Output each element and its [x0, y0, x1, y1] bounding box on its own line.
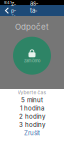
staticText: 9:41: [4, 0, 12, 5]
staticText: Odpočet: [15, 22, 49, 32]
staticText: zamčeno: [24, 58, 40, 63]
staticText: Nastavení: [30, 0, 38, 29]
button[interactable]: Back: [2, 5, 18, 16]
staticText: Vyberte čas: [17, 90, 46, 95]
button[interactable]: Zrušit: [0, 129, 64, 137]
staticText: 1 hodina: [20, 105, 44, 112]
button[interactable]: 3 hodiny: [0, 121, 64, 129]
button[interactable]: 5 minut: [0, 96, 64, 104]
button[interactable]: 1 hodina: [0, 104, 64, 112]
staticText: 5 minut: [21, 96, 43, 104]
staticText: 2 hodiny: [19, 113, 45, 120]
button[interactable]: 2 hodiny: [0, 112, 64, 121]
staticText: Zrušit: [24, 129, 40, 137]
staticText: 3 hodiny: [19, 121, 45, 128]
staticText: Zpět: [11, 1, 16, 20]
